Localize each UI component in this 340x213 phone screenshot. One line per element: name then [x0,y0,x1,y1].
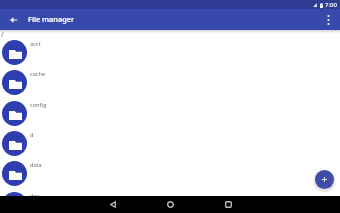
button[interactable]: data [0,158,340,188]
button[interactable]: More options [318,10,338,30]
staticText: dev [30,192,40,200]
button[interactable]: Add [315,170,334,189]
button[interactable]: Back [3,10,23,30]
button[interactable]: cache [0,67,340,97]
button[interactable]: config [0,98,340,128]
button[interactable]: d [0,128,340,158]
staticText: File manager [28,14,75,24]
staticText: 7:00 [325,1,337,9]
button[interactable]: Back [103,196,123,213]
staticText: data [30,161,42,169]
staticText: / [1,30,4,40]
staticText: cache [30,70,46,78]
button[interactable]: dev [0,189,340,213]
staticText: config [30,101,47,109]
button[interactable]: Recents [218,196,238,213]
button[interactable]: Home [160,196,180,213]
button[interactable]: acct [0,37,340,67]
staticText: acct [30,40,41,48]
staticText: d [30,131,34,139]
